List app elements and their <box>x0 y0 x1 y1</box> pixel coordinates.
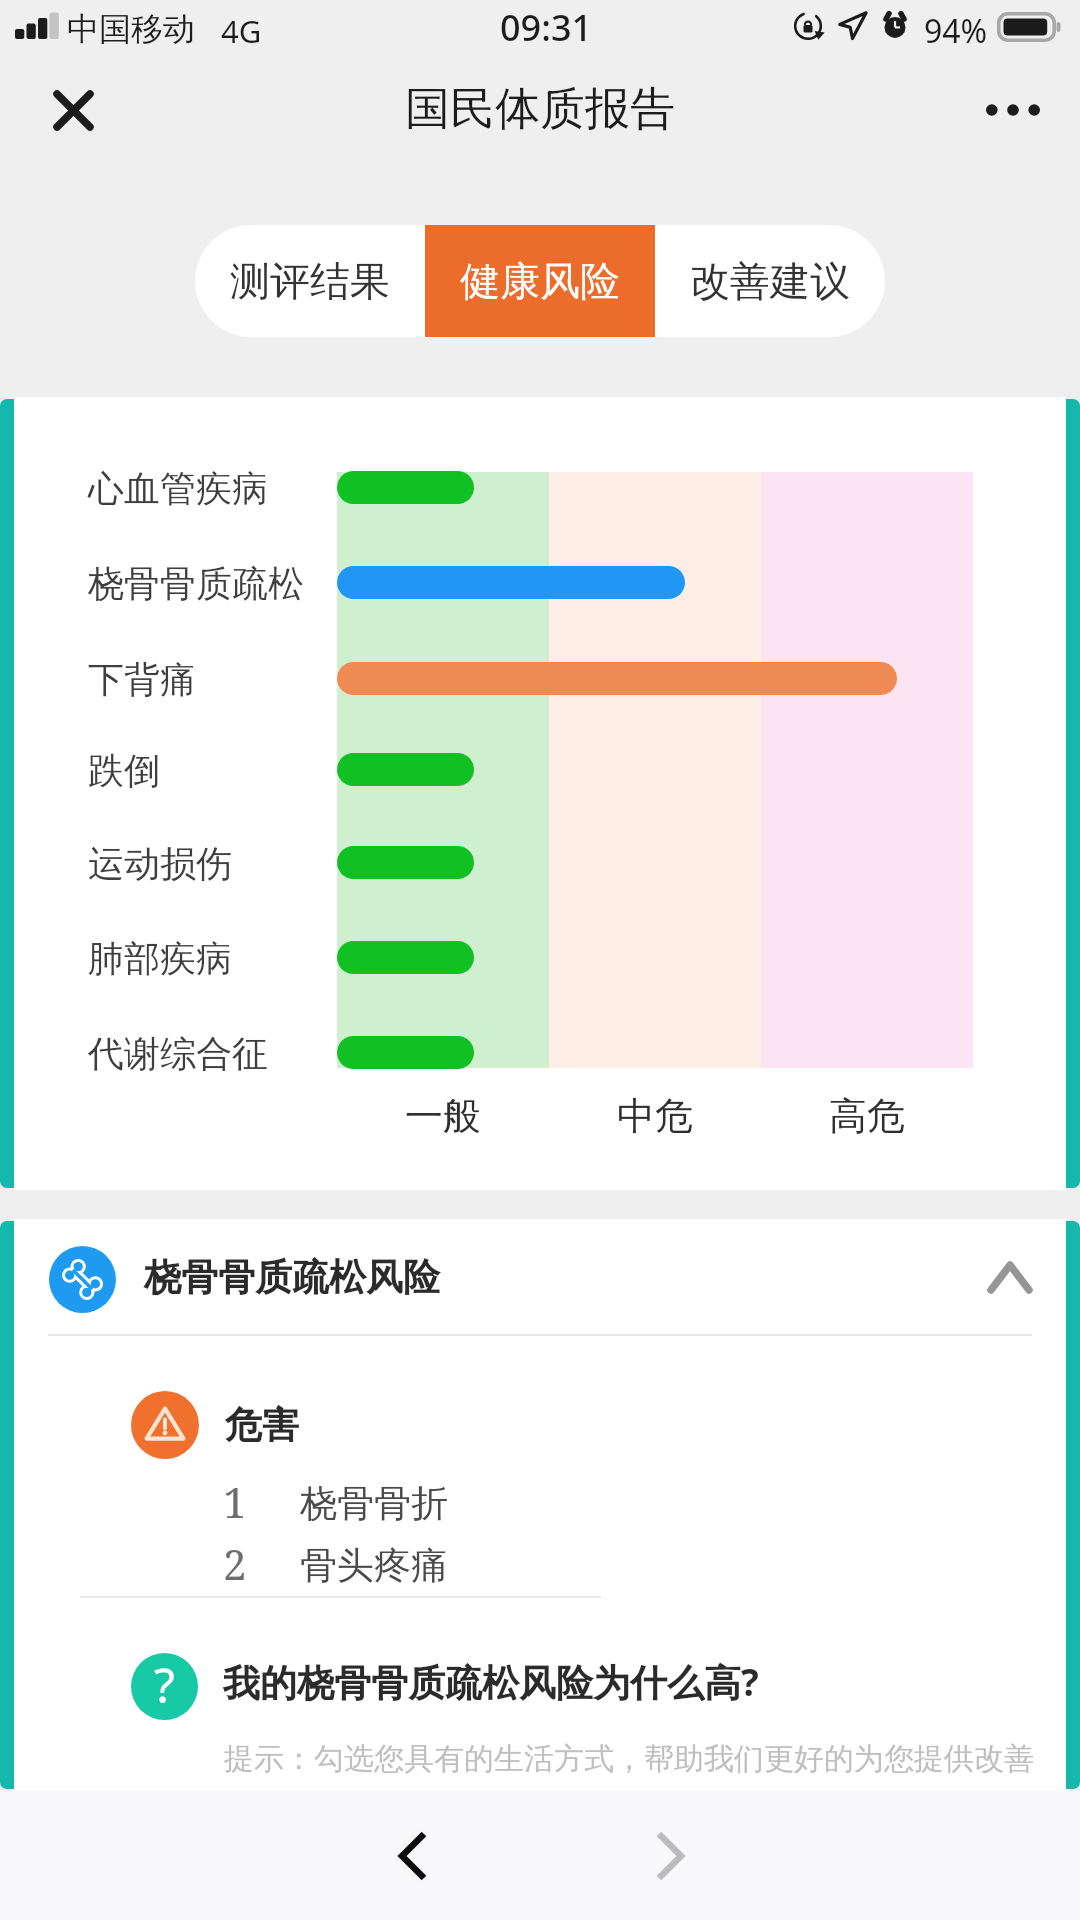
staticText: 桡骨骨质疏松风险 <box>144 1254 440 1301</box>
button[interactable]: Collapse section <box>968 1235 1052 1319</box>
staticText: 一般 <box>405 1092 481 1140</box>
button[interactable]: Close <box>34 71 112 149</box>
staticText: 改善建议 <box>690 256 850 306</box>
button[interactable]: 测评结果 <box>195 225 425 337</box>
button[interactable]: More options <box>968 75 1058 145</box>
staticText: 2 <box>223 1535 247 1592</box>
button[interactable]: ? <box>14 1639 1066 1731</box>
staticText: 桡骨骨质疏松 <box>88 561 304 606</box>
staticText: 4G <box>221 10 262 52</box>
staticText: 心血管疾病 <box>88 466 268 511</box>
staticText: 下背痛 <box>88 657 196 702</box>
staticText: 骨头疼痛 <box>300 1542 448 1589</box>
staticText: ? <box>154 1653 175 1717</box>
staticText: 09:31 <box>500 3 593 52</box>
staticText: 我的桡骨骨质疏松风险为什么高? <box>223 1656 759 1707</box>
staticText: 测评结果 <box>230 256 390 306</box>
button[interactable]: 健康风险 <box>425 225 655 337</box>
staticText: 健康风险 <box>460 256 620 306</box>
staticText: 代谢综合征 <box>88 1031 268 1076</box>
button[interactable]: 改善建议 <box>655 225 885 337</box>
staticText: 高危 <box>829 1092 905 1140</box>
button[interactable]: Forward <box>625 1811 715 1901</box>
staticText: 桡骨骨折 <box>300 1480 448 1527</box>
staticText: 中国移动 <box>67 9 195 49</box>
staticText: 94% <box>924 9 988 53</box>
button[interactable]: 桡骨骨质疏松风险 <box>14 1219 1066 1334</box>
staticText: 肺部疾病 <box>88 936 232 981</box>
staticText: 国民体质报告 <box>405 81 675 138</box>
staticText: 运动损伤 <box>88 841 232 886</box>
staticText: 1 <box>223 1473 247 1530</box>
staticText: 跌倒 <box>88 748 160 793</box>
staticText: 中危 <box>617 1092 693 1140</box>
button[interactable]: Back <box>368 1811 458 1901</box>
staticText: 提示：勾选您具有的生活方式，帮助我们更好的为您提供改善 <box>224 1740 1034 1778</box>
staticText: 危害 <box>225 1402 299 1449</box>
